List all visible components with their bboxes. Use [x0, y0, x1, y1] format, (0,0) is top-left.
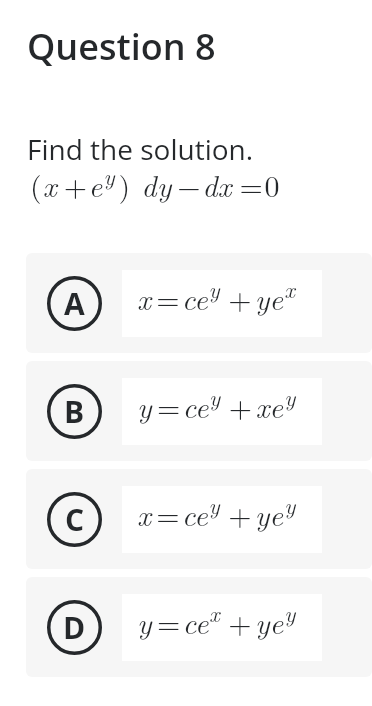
staticText: B: [64, 391, 85, 432]
staticText: D: [63, 607, 86, 648]
button[interactable]: Answer option C: [26, 469, 372, 569]
button[interactable]: Answer option D: [26, 577, 372, 677]
staticText: y = ce x + ye y: [137, 596, 296, 643]
staticText: y = ce y + xe y: [137, 380, 296, 427]
button[interactable]: Answer option B: [26, 361, 372, 461]
staticText: A: [64, 283, 85, 324]
staticText: x = ce y + ye x: [137, 272, 295, 319]
staticText: Question 8: [27, 22, 216, 71]
staticText: C: [65, 499, 85, 540]
staticText: ( x + e y ) dy − dx = 0: [30, 159, 280, 206]
button[interactable]: Answer option A: [26, 253, 372, 353]
staticText: Find the solution.: [27, 130, 254, 168]
staticText: x = ce y + ye y: [137, 488, 296, 535]
